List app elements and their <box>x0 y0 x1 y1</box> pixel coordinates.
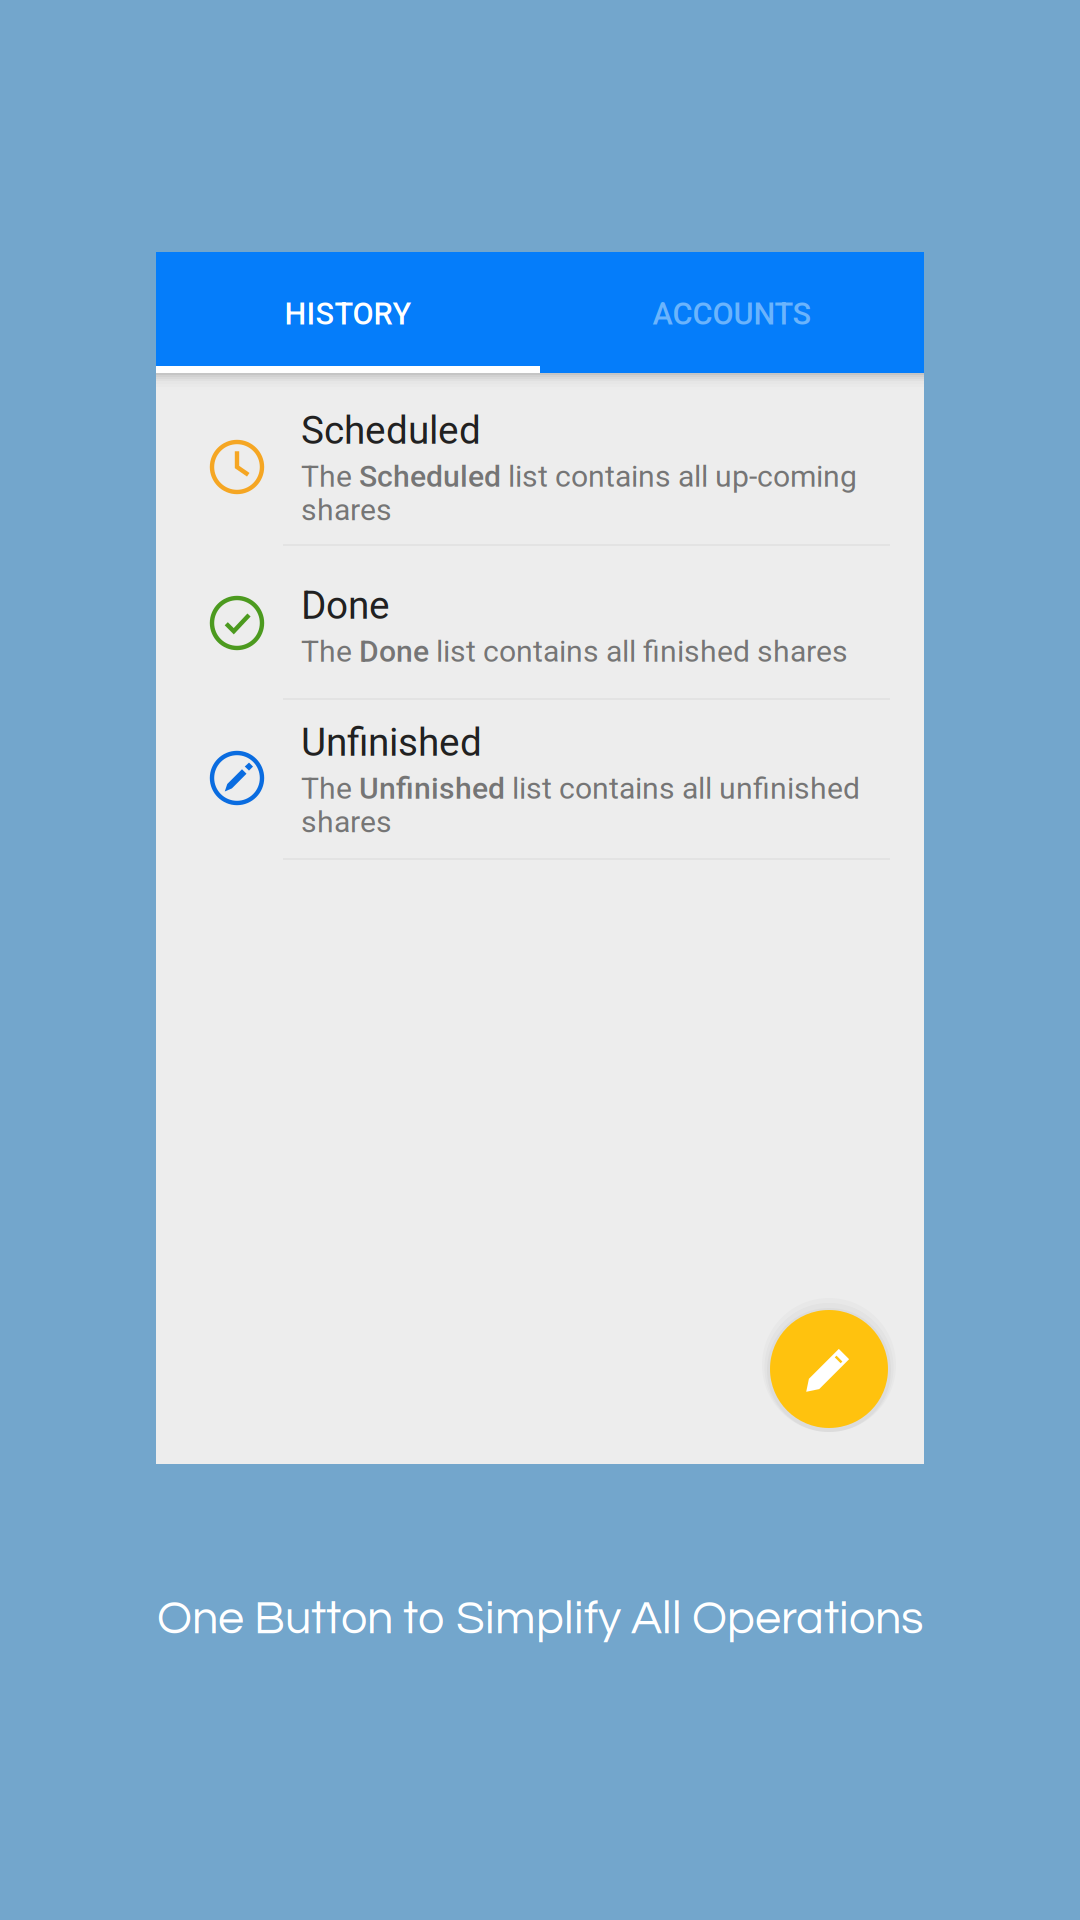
staticText: The Unfinished list contains all unfinis… <box>301 771 860 839</box>
staticText: Done <box>301 583 390 628</box>
button[interactable]: Compose <box>761 1298 897 1432</box>
staticText: One Button to Simplify All Operations <box>157 1595 923 1643</box>
button[interactable]: Unfinished <box>156 700 924 860</box>
staticText: HISTORY <box>284 296 411 332</box>
button[interactable]: Scheduled <box>156 373 924 546</box>
staticText: ACCOUNTS <box>652 296 811 332</box>
button[interactable]: Done <box>156 546 924 700</box>
button[interactable]: HISTORY <box>156 252 540 366</box>
staticText: The Scheduled list contains all up-comin… <box>301 459 857 527</box>
staticText: The Done list contains all finished shar… <box>301 634 848 669</box>
staticText: Unfinished <box>301 720 482 765</box>
button[interactable]: ACCOUNTS <box>540 252 924 366</box>
staticText: Scheduled <box>301 408 481 453</box>
